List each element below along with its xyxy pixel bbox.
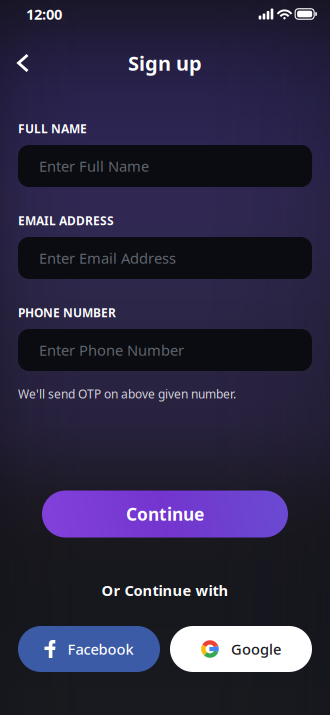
- button[interactable]: Continue: [42, 490, 288, 537]
- staticText: Or Continue with: [101, 580, 228, 600]
- button[interactable]: Enter Phone Number: [18, 329, 312, 371]
- staticText: Enter Email Address: [39, 248, 176, 268]
- staticText: We'll send OTP on above given number.: [18, 386, 236, 402]
- button[interactable]: Back: [0, 46, 42, 79]
- button[interactable]: Enter Email Address: [18, 237, 312, 279]
- staticText: Enter Full Name: [39, 156, 149, 176]
- button[interactable]: Google: [170, 626, 312, 672]
- button[interactable]: Facebook: [18, 626, 160, 672]
- staticText: Continue: [126, 502, 204, 525]
- staticText: EMAIL ADDRESS: [18, 212, 114, 228]
- staticText: 12:00: [26, 4, 62, 24]
- staticText: Sign up: [128, 50, 202, 76]
- staticText: FULL NAME: [18, 120, 87, 136]
- staticText: PHONE NUMBER: [18, 304, 116, 320]
- staticText: Enter Phone Number: [39, 340, 184, 360]
- button[interactable]: Enter Full Name: [18, 145, 312, 187]
- staticText: Google: [231, 639, 281, 659]
- staticText: Facebook: [67, 639, 133, 659]
